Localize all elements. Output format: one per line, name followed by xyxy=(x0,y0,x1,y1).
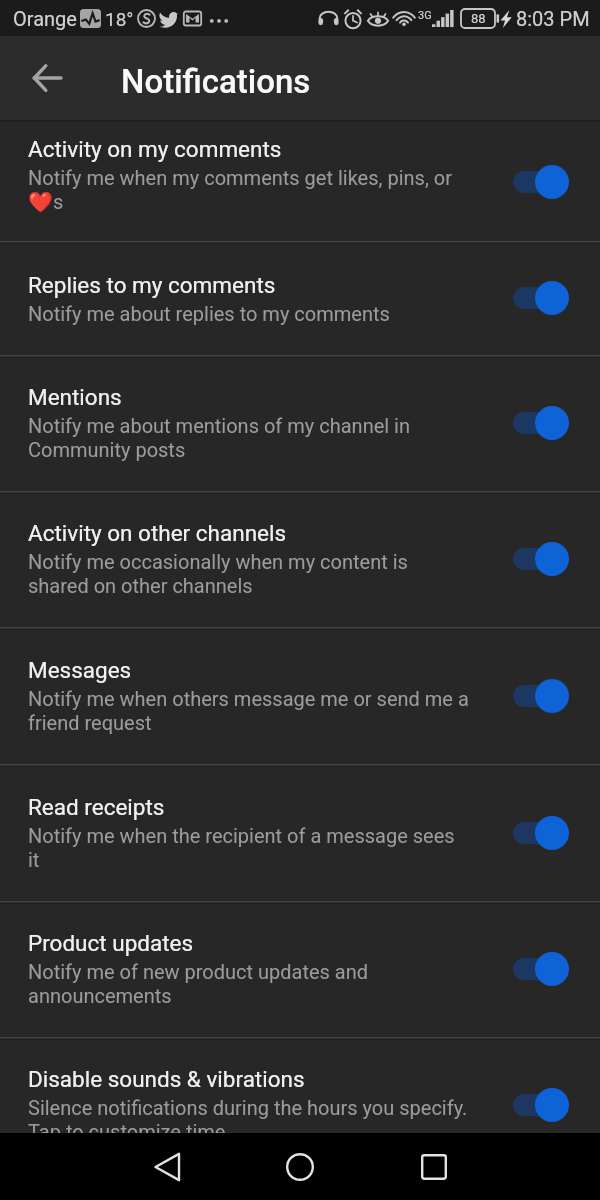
button[interactable]: Mentions xyxy=(0,355,600,491)
staticText: Notify me about mentions of my channel i… xyxy=(28,414,411,462)
button[interactable]: Toggle on xyxy=(511,537,586,581)
staticText: Messages xyxy=(28,657,132,683)
staticText: Notify me when others message me or send… xyxy=(28,687,469,735)
button[interactable]: Activity on other channels xyxy=(0,491,600,627)
button[interactable]: Toggle on xyxy=(511,276,586,320)
button[interactable]: Toggle on xyxy=(511,947,586,991)
staticText: Notify me when the recipient of a messag… xyxy=(28,824,455,872)
staticText: Activity on my comments xyxy=(28,136,282,162)
staticText: Disable sounds & vibrations xyxy=(28,1066,305,1092)
staticText: 88 xyxy=(471,11,486,26)
button[interactable]: Home xyxy=(271,1138,329,1196)
button[interactable]: Read receipts xyxy=(0,764,600,901)
button[interactable]: Product updates xyxy=(0,901,600,1037)
button[interactable]: Back xyxy=(21,52,73,104)
button[interactable]: Replies to my comments xyxy=(0,241,600,355)
staticText: Notify me when my comments get likes, pi… xyxy=(28,166,452,214)
staticText: Orange xyxy=(13,7,77,30)
staticText: Notify me occasionally when my content i… xyxy=(28,550,408,598)
staticText: 18° xyxy=(105,8,134,30)
staticText: Silence notifications during the hours y… xyxy=(28,1096,468,1133)
button[interactable]: Toggle on xyxy=(511,160,586,204)
button[interactable]: Toggle on xyxy=(511,674,586,718)
button[interactable]: Toggle on xyxy=(511,1083,586,1127)
staticText: Product updates xyxy=(28,930,194,956)
button[interactable]: Messages xyxy=(0,627,600,764)
staticText: Notify me of new product updates and ann… xyxy=(28,960,369,1008)
staticText: Replies to my comments xyxy=(28,272,276,298)
button[interactable]: Disable sounds & vibrations xyxy=(0,1037,600,1133)
staticText: 3G xyxy=(418,9,432,22)
button[interactable]: Toggle on xyxy=(511,811,586,855)
staticText: Read receipts xyxy=(28,794,165,820)
staticText: Activity on other channels xyxy=(28,520,287,546)
button[interactable]: Activity on my comments xyxy=(0,122,600,241)
staticText: 8:03 PM xyxy=(516,7,590,30)
staticText: Mentions xyxy=(28,384,122,410)
staticText: Notify me about replies to my comments xyxy=(28,302,390,325)
button[interactable]: Recent apps xyxy=(405,1138,463,1196)
button[interactable]: Toggle on xyxy=(511,401,586,445)
button[interactable]: Back xyxy=(138,1138,196,1196)
staticText: Notifications xyxy=(121,62,311,101)
